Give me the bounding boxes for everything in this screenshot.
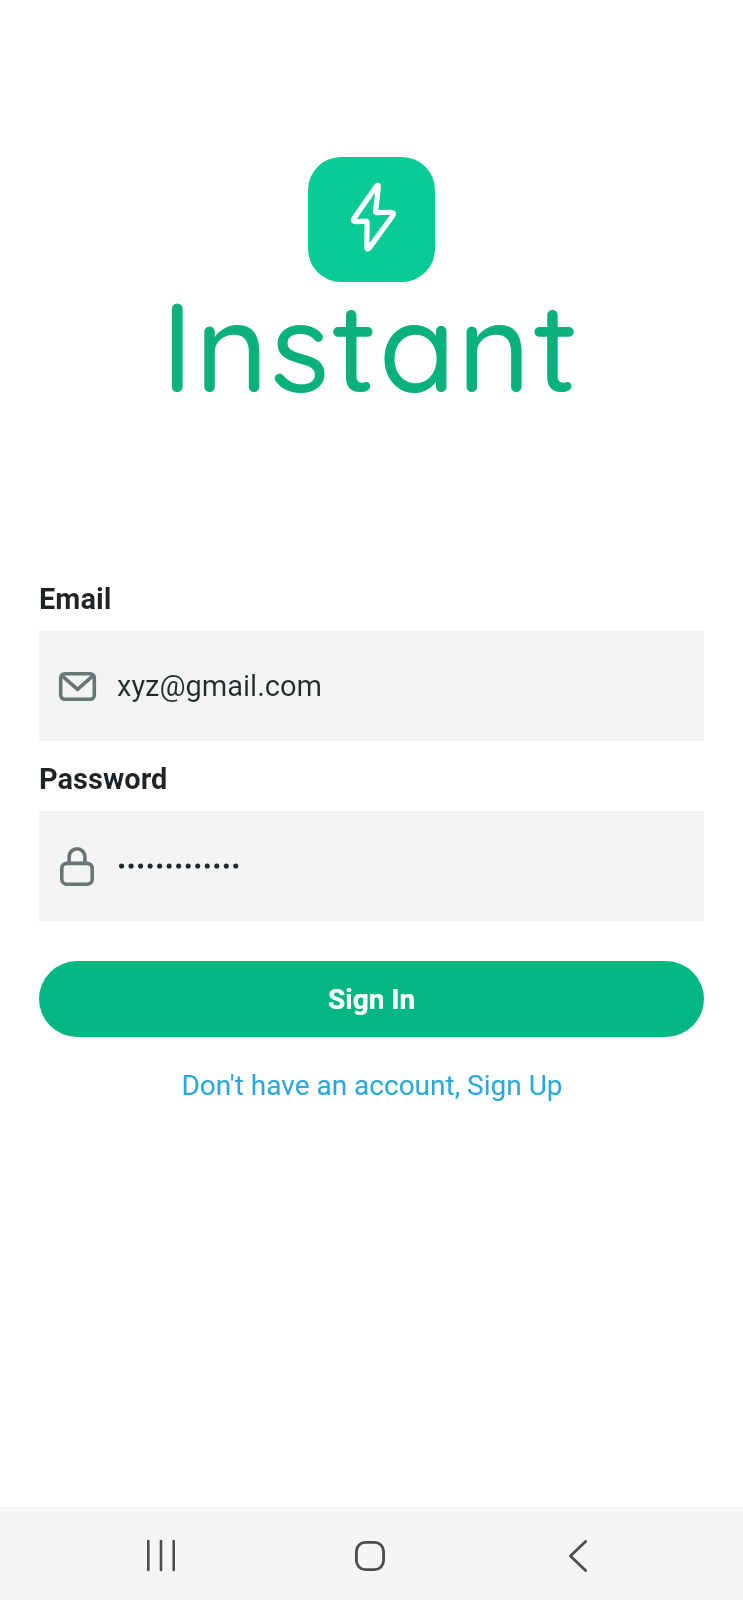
button[interactable]: Sign In	[39, 961, 704, 1037]
staticText: Instant	[161, 267, 580, 423]
staticText: Password	[39, 762, 168, 796]
staticText: Email	[39, 582, 112, 616]
button[interactable]	[39, 811, 704, 921]
staticText: xyz@gmail.com	[117, 669, 322, 703]
staticText: Sign In	[328, 983, 416, 1016]
button[interactable]: Back	[532, 1510, 623, 1600]
button[interactable]: Don't have an account, Sign Up	[39, 1069, 704, 1102]
staticText: Don't have an account, Sign Up	[181, 1069, 563, 1102]
button[interactable]: Recent apps	[113, 1510, 208, 1600]
button[interactable]: Home	[324, 1510, 415, 1600]
button[interactable]: xyz@gmail.com	[39, 631, 704, 741]
